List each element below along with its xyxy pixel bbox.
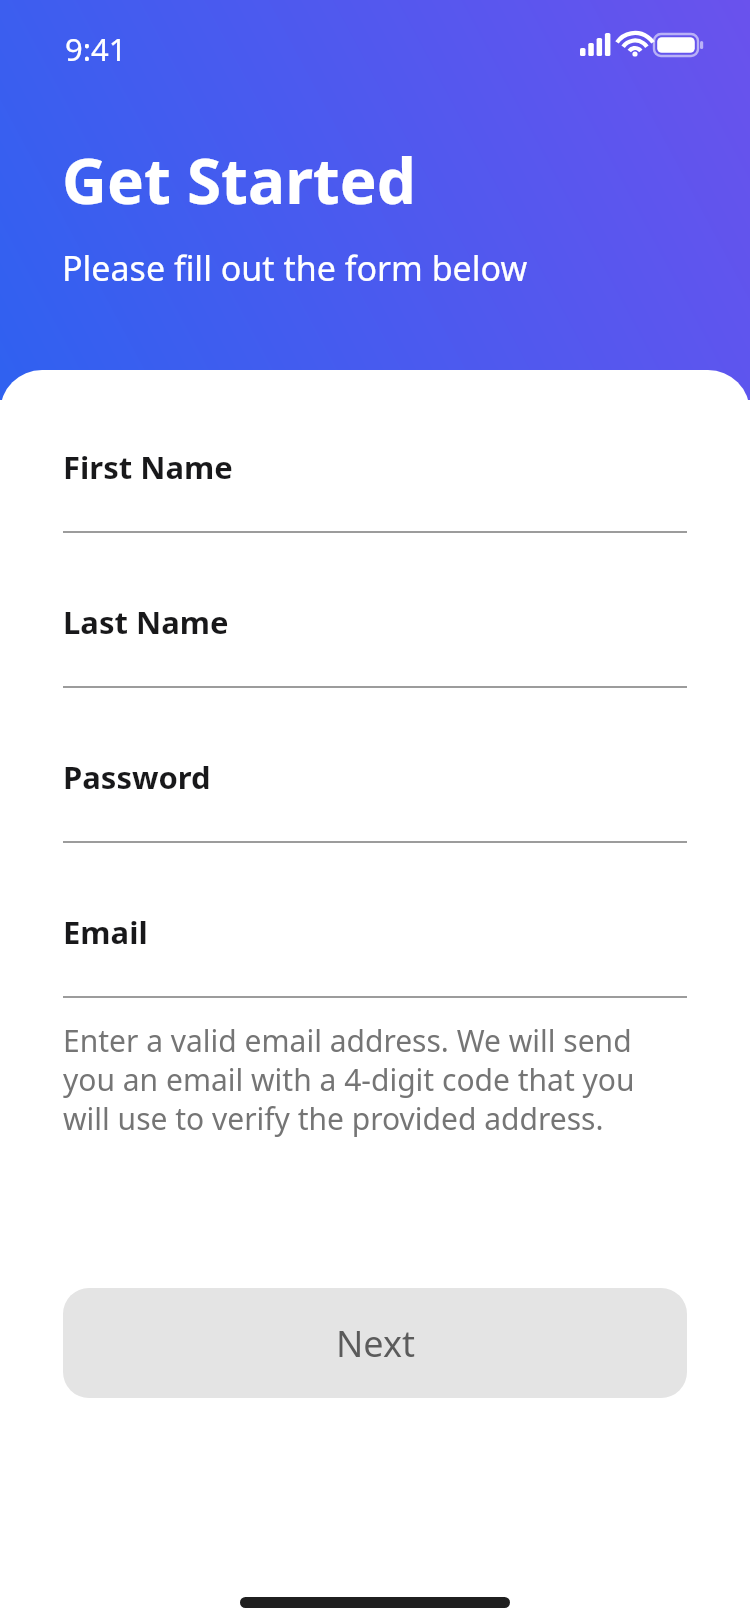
button[interactable]: First Name xyxy=(63,426,687,533)
staticText: 9:41 xyxy=(65,28,127,70)
other: Home indicator xyxy=(240,1597,510,1608)
staticText: Email xyxy=(63,911,148,953)
staticText: First Name xyxy=(63,446,233,488)
button[interactable]: Email xyxy=(63,891,687,998)
button[interactable]: Next xyxy=(63,1288,687,1398)
staticText: Get Started xyxy=(62,138,416,222)
button[interactable]: Password xyxy=(63,736,687,843)
staticText: Enter a valid email address. We will sen… xyxy=(63,1020,687,1138)
staticText: Password xyxy=(63,756,211,798)
button[interactable]: Last Name xyxy=(63,581,687,688)
staticText: Next xyxy=(336,1319,415,1368)
staticText: Last Name xyxy=(63,601,229,643)
staticText: Please fill out the form below xyxy=(62,245,528,291)
